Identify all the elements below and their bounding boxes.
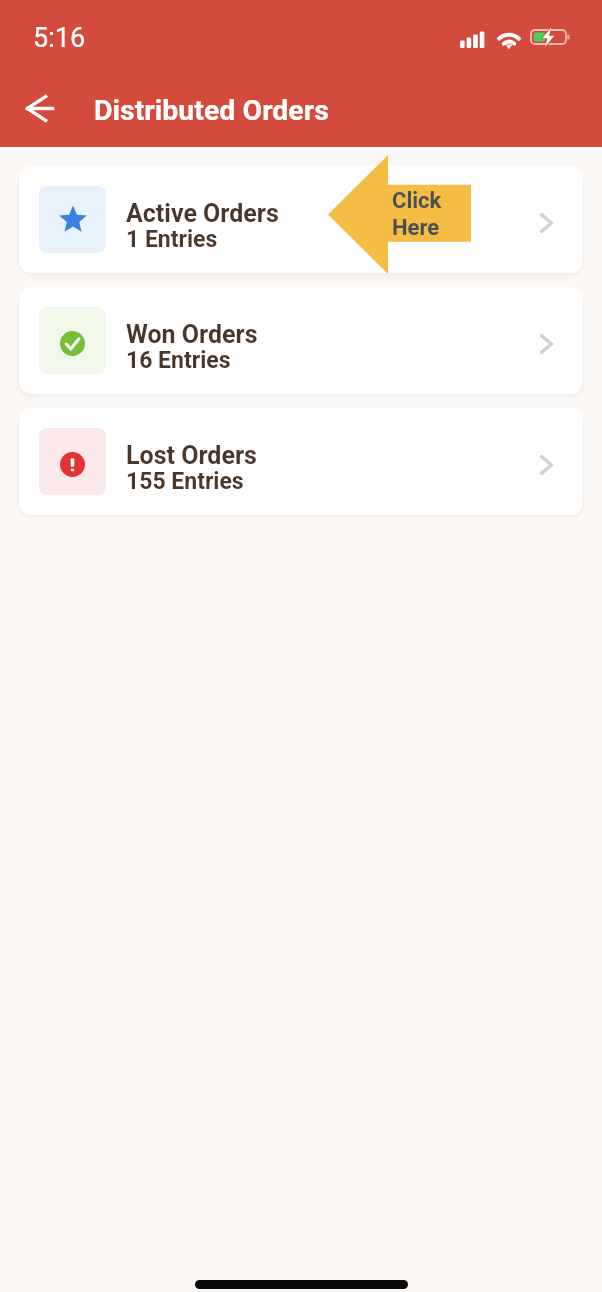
staticText: Won Orders: [126, 320, 258, 349]
staticText: Lost Orders: [126, 441, 257, 470]
staticText: Here: [392, 215, 440, 241]
staticText: 16 Entries: [126, 347, 231, 374]
staticText: Click: [392, 188, 442, 214]
staticText: 5:16: [33, 22, 86, 54]
button[interactable]: Click: [328, 155, 471, 274]
button[interactable]: Back: [15, 83, 65, 133]
button[interactable]: Active Orders: [19, 166, 583, 273]
staticText: Distributed Orders: [94, 94, 329, 127]
staticText: Active Orders: [126, 199, 279, 228]
button[interactable]: Won Orders: [19, 287, 583, 394]
staticText: 155 Entries: [126, 468, 244, 495]
button[interactable]: Lost Orders: [19, 408, 583, 515]
staticText: 1 Entries: [126, 226, 218, 253]
